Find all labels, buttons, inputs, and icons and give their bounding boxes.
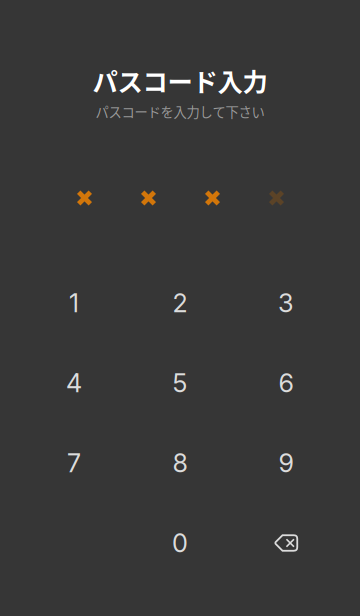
staticText: 5 [172,368,187,398]
button[interactable]: 0 [127,503,233,583]
staticText: 3 [278,288,294,318]
staticText: 7 [67,448,81,478]
button[interactable]: 6 [233,343,339,423]
button[interactable]: 3 [233,263,339,343]
button[interactable]: Delete [233,503,339,583]
button[interactable]: 5 [127,343,233,423]
staticText: 9 [278,448,293,478]
staticText: 0 [172,528,188,558]
button[interactable]: 2 [127,263,233,343]
staticText: 4 [66,368,82,398]
button[interactable]: 9 [233,423,339,503]
staticText: パスコード入力 [92,62,267,99]
staticText: 8 [172,448,187,478]
staticText: パスコードを入力して下さい [95,102,264,121]
staticText: 2 [172,288,187,318]
button[interactable]: 1 [21,263,127,343]
staticText: 6 [278,368,293,398]
button[interactable]: 4 [21,343,127,423]
button[interactable]: 8 [127,423,233,503]
button[interactable]: 7 [21,423,127,503]
staticText: 1 [69,288,79,318]
